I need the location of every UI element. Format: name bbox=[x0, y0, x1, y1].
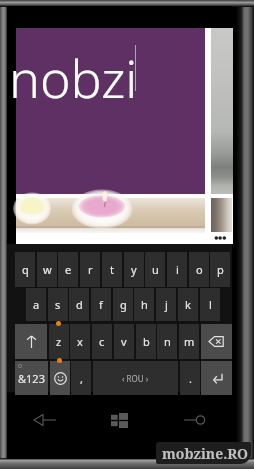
staticText: a bbox=[33, 297, 40, 312]
button[interactable]: d bbox=[69, 288, 89, 321]
button[interactable]: k bbox=[178, 288, 198, 321]
button[interactable]: r bbox=[80, 252, 100, 287]
button[interactable]: h bbox=[134, 288, 154, 321]
button[interactable]: n bbox=[157, 324, 177, 359]
button[interactable]: f bbox=[91, 288, 111, 321]
staticText: d bbox=[76, 297, 83, 312]
staticText: x bbox=[77, 334, 83, 349]
button[interactable]: c bbox=[92, 324, 112, 359]
button[interactable]: s bbox=[48, 288, 68, 321]
button[interactable]: y bbox=[124, 252, 144, 287]
staticText: v bbox=[121, 334, 127, 349]
button[interactable]: , bbox=[71, 361, 91, 395]
button[interactable]: Back bbox=[7, 405, 82, 435]
staticText: . bbox=[189, 371, 192, 386]
button[interactable]: p bbox=[210, 252, 230, 287]
staticText: g bbox=[120, 297, 127, 312]
staticText: f bbox=[99, 297, 103, 312]
staticText: u bbox=[152, 262, 159, 277]
button[interactable]: t bbox=[102, 252, 122, 287]
staticText: p bbox=[217, 262, 224, 277]
staticText: t bbox=[110, 262, 114, 277]
button[interactable]: Backspace bbox=[201, 324, 232, 359]
button[interactable]: e bbox=[58, 252, 78, 287]
staticText: j bbox=[165, 297, 168, 312]
staticText: q bbox=[22, 262, 29, 277]
staticText: s bbox=[55, 297, 61, 312]
staticText: o bbox=[196, 262, 203, 277]
button[interactable]: q bbox=[15, 252, 35, 287]
button[interactable]: o bbox=[189, 252, 209, 287]
staticText: h bbox=[141, 297, 148, 312]
button[interactable]: nobzi bbox=[16, 28, 205, 194]
staticText: r bbox=[88, 262, 93, 277]
button[interactable]: Enter bbox=[201, 361, 232, 395]
staticText: i bbox=[176, 262, 179, 277]
button[interactable]: &123 bbox=[15, 361, 48, 395]
staticText: z bbox=[56, 334, 62, 349]
staticText: , bbox=[80, 371, 83, 386]
button[interactable]: i bbox=[167, 252, 187, 287]
button[interactable]: v bbox=[114, 324, 134, 359]
button[interactable]: z bbox=[49, 324, 69, 359]
button[interactable]: a bbox=[26, 288, 46, 321]
button[interactable]: w bbox=[37, 252, 57, 287]
button[interactable]: Search bbox=[157, 405, 232, 435]
staticText: &123 bbox=[18, 371, 45, 386]
button[interactable]: l bbox=[200, 288, 220, 321]
staticText: ‹ ROU › bbox=[122, 373, 149, 384]
staticText: e bbox=[65, 262, 72, 277]
button[interactable]: ‹ ROU › bbox=[93, 361, 178, 395]
button[interactable]: b bbox=[136, 324, 156, 359]
staticText: b bbox=[143, 334, 150, 349]
button[interactable]: j bbox=[156, 288, 176, 321]
button[interactable]: g bbox=[113, 288, 133, 321]
staticText: c bbox=[99, 334, 105, 349]
button[interactable]: Emoji bbox=[50, 361, 70, 395]
button[interactable]: u bbox=[145, 252, 165, 287]
staticText: n bbox=[164, 334, 171, 349]
button[interactable]: x bbox=[70, 324, 90, 359]
staticText: l bbox=[209, 297, 212, 312]
button[interactable]: Start bbox=[82, 405, 157, 435]
staticText: w bbox=[43, 262, 52, 277]
staticText: y bbox=[131, 262, 137, 277]
staticText: nobzi bbox=[9, 42, 138, 113]
staticText: m bbox=[184, 334, 195, 349]
staticText: k bbox=[185, 297, 191, 312]
staticText: mobzine.RO bbox=[162, 444, 248, 463]
button[interactable]: m bbox=[179, 324, 199, 359]
button[interactable]: Shift bbox=[15, 324, 47, 359]
button[interactable]: . bbox=[180, 361, 200, 395]
